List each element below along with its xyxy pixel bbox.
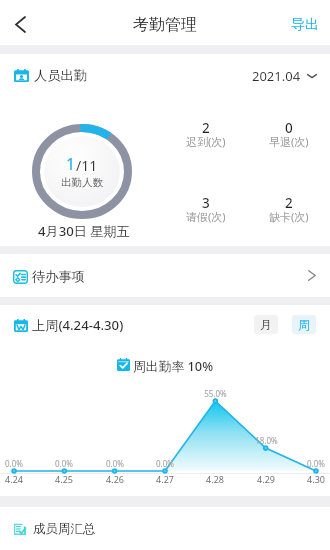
staticText: 迟到(次) xyxy=(186,134,226,149)
button[interactable]: 2021.04 xyxy=(252,66,318,84)
staticText: 4.29 xyxy=(257,473,275,485)
staticText: 3 xyxy=(202,194,210,212)
button[interactable]: 2 xyxy=(165,119,247,153)
staticText: 0.0% xyxy=(307,458,325,469)
staticText: 人员出勤 xyxy=(34,67,87,84)
button[interactable]: 0 xyxy=(247,119,330,153)
button[interactable]: Back xyxy=(0,0,45,45)
staticText: 2 xyxy=(202,119,210,137)
staticText: 4.24 xyxy=(5,473,23,485)
staticText: /11 xyxy=(76,156,98,175)
staticText: 18.0% xyxy=(255,435,278,446)
staticText: 周出勤率 10% xyxy=(133,357,214,374)
staticText: 4.28 xyxy=(206,473,224,485)
staticText: 0.0% xyxy=(55,458,73,469)
staticText: 考勤管理 xyxy=(133,15,197,35)
staticText: 请假(次) xyxy=(186,209,226,224)
staticText: 出勤人数 xyxy=(61,176,103,189)
staticText: 4.26 xyxy=(106,473,124,485)
staticText: 2 xyxy=(285,194,293,212)
staticText: 1 xyxy=(66,153,76,175)
staticText: 4.25 xyxy=(55,473,73,485)
staticText: 4月30日 星期五 xyxy=(38,222,130,240)
staticText: 0.0% xyxy=(106,458,124,469)
staticText: 月 xyxy=(260,317,272,332)
staticText: 0 xyxy=(285,119,293,137)
staticText: 55.0% xyxy=(204,388,227,399)
staticText: 4.30 xyxy=(307,473,325,485)
staticText: 0.0% xyxy=(5,458,23,469)
staticText: 4.27 xyxy=(156,473,174,485)
staticText: 待办事项 xyxy=(32,268,85,285)
button[interactable]: 周 xyxy=(292,315,316,334)
button[interactable]: 成员周汇总 xyxy=(0,507,330,550)
staticText: 导出 xyxy=(291,16,319,34)
button[interactable]: 待办事项 xyxy=(0,254,330,297)
button[interactable]: 导出 xyxy=(291,0,319,45)
staticText: 2021.04 xyxy=(252,67,301,85)
staticText: 周 xyxy=(298,317,310,332)
staticText: 早退(次) xyxy=(269,134,309,149)
staticText: 成员周汇总 xyxy=(33,521,96,537)
staticText: 上周(4.24-4.30) xyxy=(32,316,124,334)
staticText: 缺卡(次) xyxy=(269,209,309,224)
staticText: 0.0% xyxy=(156,458,174,469)
button[interactable]: 2 xyxy=(247,194,330,228)
button[interactable]: 3 xyxy=(165,194,247,228)
button[interactable]: 月 xyxy=(254,315,278,334)
